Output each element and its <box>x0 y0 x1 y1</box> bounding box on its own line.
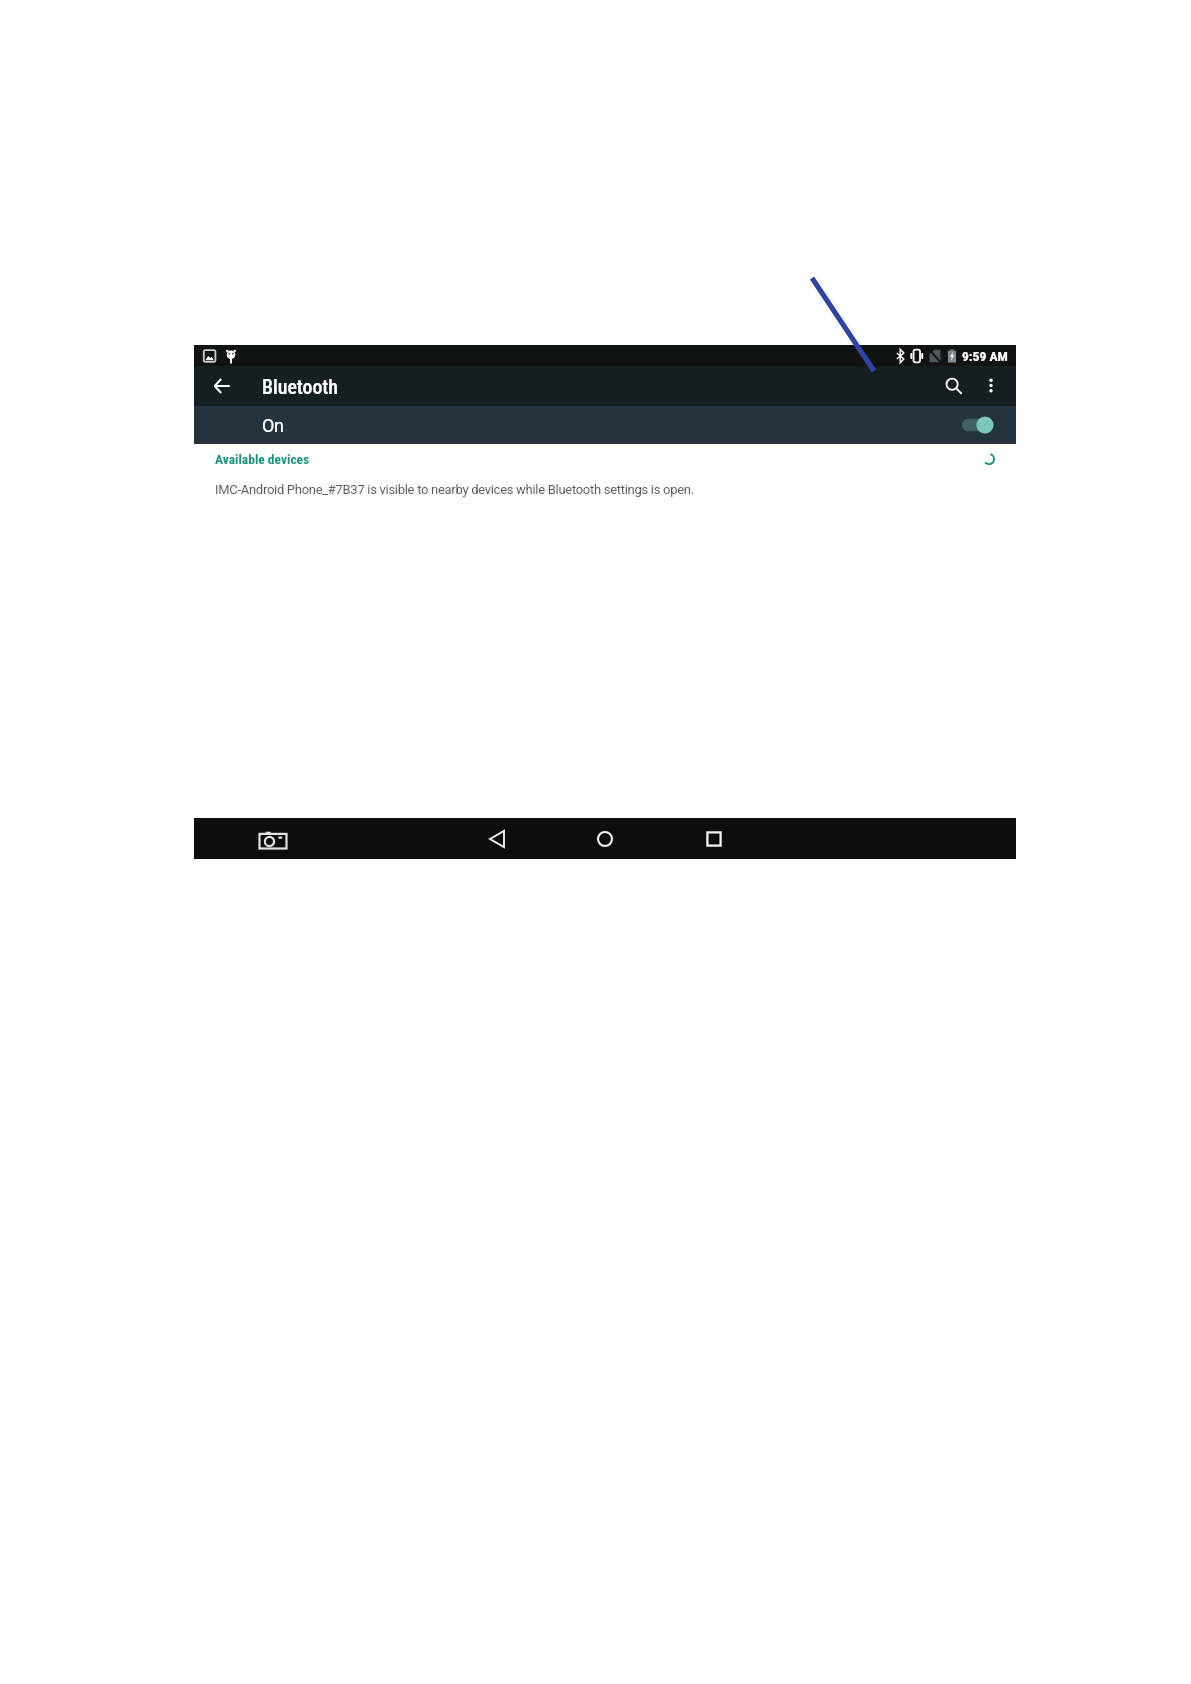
button[interactable]: Back <box>477 818 517 859</box>
button[interactable]: Navigate up <box>206 370 238 402</box>
staticText: IMC-Android Phone_#7B37 is visible to ne… <box>215 482 694 497</box>
button[interactable]: Home <box>585 818 625 859</box>
button[interactable]: Recent apps <box>694 818 734 859</box>
staticText: On <box>262 415 284 436</box>
button[interactable]: Take screenshot <box>253 818 293 859</box>
staticText: 9:59 AM <box>962 348 1008 364</box>
button[interactable]: On <box>194 406 1016 444</box>
staticText: Available devices <box>215 451 310 467</box>
button[interactable]: Bluetooth on <box>954 406 994 444</box>
staticText: Bluetooth <box>262 376 338 399</box>
button[interactable]: Search <box>937 370 969 402</box>
button[interactable]: More options <box>977 372 1005 400</box>
